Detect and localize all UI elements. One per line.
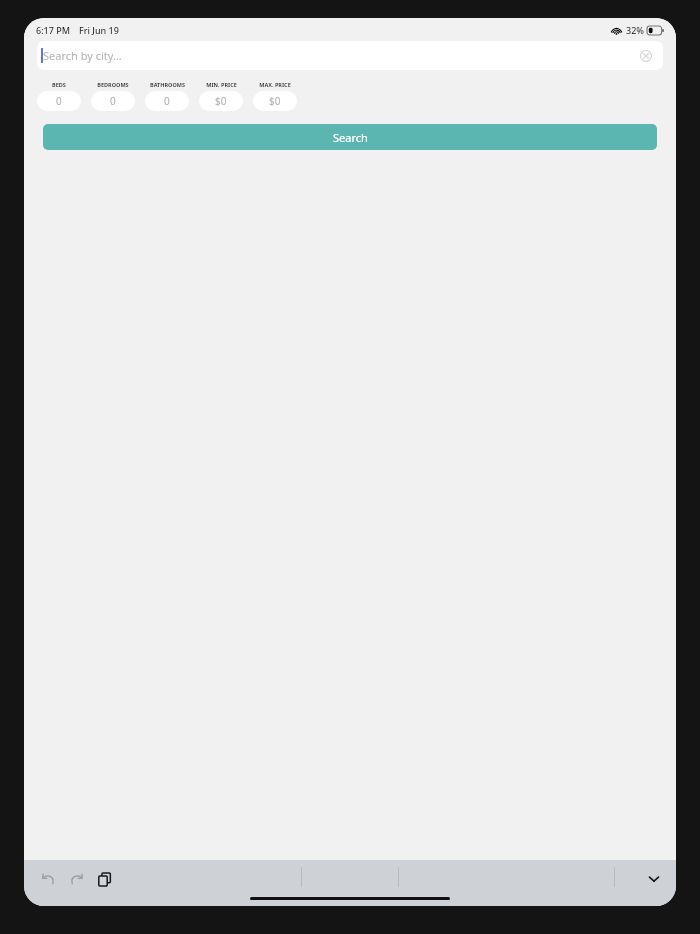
button[interactable]: Undo	[36, 867, 60, 891]
staticText: $0	[269, 94, 281, 108]
button[interactable]: BATHROOMS	[145, 81, 189, 111]
button[interactable]: Search	[43, 124, 657, 150]
staticText: 0	[110, 94, 116, 108]
staticText: MIN. PRICE	[206, 81, 237, 88]
staticText: BEDROOMS	[97, 81, 129, 88]
button[interactable]: Redo	[64, 867, 88, 891]
staticText: 0	[56, 94, 62, 108]
staticText: 0	[164, 94, 170, 108]
button[interactable]: BEDROOMS	[91, 81, 135, 111]
button[interactable]: BEDS	[37, 81, 81, 111]
staticText: 32%	[626, 24, 644, 36]
staticText: Search by city...	[43, 48, 122, 63]
staticText: MAX. PRICE	[259, 81, 291, 88]
staticText: 6:17 PM	[36, 24, 70, 36]
button[interactable]: Clear search	[636, 46, 656, 66]
staticText: Fri Jun 19	[79, 24, 119, 36]
button[interactable]: Hide keyboard	[642, 867, 666, 891]
button[interactable]: MAX. PRICE	[253, 81, 297, 111]
button[interactable]: MIN. PRICE	[199, 81, 243, 111]
staticText: Search	[333, 130, 368, 145]
button[interactable]: Paste	[92, 867, 116, 891]
staticText: BEDS	[52, 81, 66, 88]
button[interactable]: Search by city...	[37, 41, 663, 70]
staticText: $0	[215, 94, 227, 108]
staticText: BATHROOMS	[150, 81, 185, 88]
